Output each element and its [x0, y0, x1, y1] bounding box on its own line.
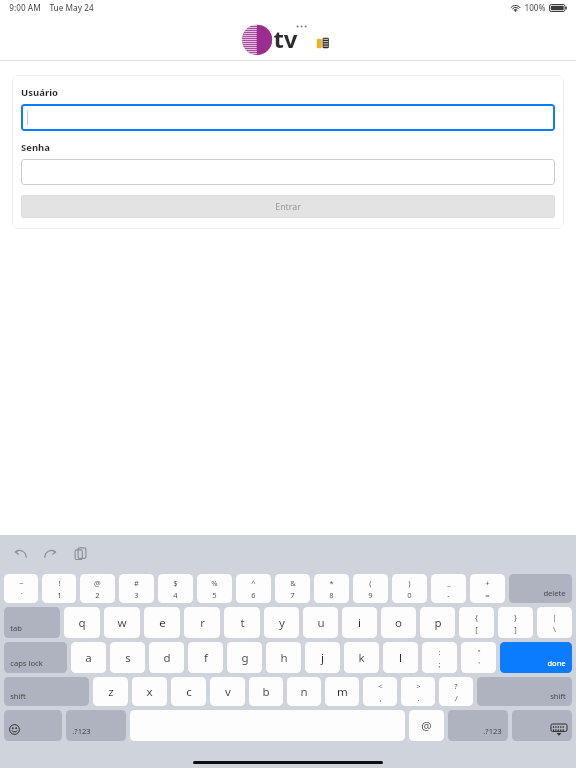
staticText: /: [455, 693, 458, 703]
button[interactable]: >: [401, 677, 435, 706]
staticText: s: [125, 650, 131, 666]
staticText: ,: [379, 693, 382, 703]
staticText: q: [78, 615, 86, 631]
button[interactable]: h: [266, 642, 301, 673]
button[interactable]: d: [149, 642, 184, 673]
staticText: *: [329, 578, 334, 588]
button[interactable]: n: [287, 677, 321, 706]
staticText: z: [108, 684, 114, 700]
button[interactable]: f: [188, 642, 223, 673]
button[interactable]: [21, 104, 555, 131]
button[interactable]: &: [275, 574, 310, 603]
staticText: 9:00 AM: [9, 2, 41, 13]
staticText: d: [163, 650, 171, 666]
button[interactable]: }: [498, 607, 533, 638]
button[interactable]: shift: [4, 677, 89, 706]
staticText: 4: [173, 590, 178, 600]
button[interactable]: a: [71, 642, 106, 673]
button[interactable]: u: [303, 607, 338, 638]
button[interactable]: <: [363, 677, 397, 706]
staticText: 6: [251, 590, 256, 600]
staticText: ): [408, 578, 411, 588]
button[interactable]: ": [461, 642, 496, 673]
button[interactable]: y: [264, 607, 299, 638]
button[interactable]: c: [171, 677, 206, 706]
staticText: .: [417, 693, 420, 703]
staticText: v: [225, 684, 231, 700]
button[interactable]: :: [422, 642, 457, 673]
staticText: g: [241, 650, 249, 666]
staticText: ~: [19, 578, 24, 588]
button[interactable]: ?: [439, 677, 473, 706]
staticText: -: [447, 590, 450, 600]
button[interactable]: q: [64, 607, 100, 638]
staticText: 0: [407, 590, 412, 600]
staticText: 5: [212, 590, 217, 600]
button[interactable]: $: [158, 574, 193, 603]
button[interactable]: l: [383, 642, 418, 673]
staticText: ": [477, 647, 481, 657]
button[interactable]: |: [537, 607, 572, 638]
button[interactable]: o: [381, 607, 416, 638]
other: Redo: [43, 546, 58, 561]
button[interactable]: .?123: [66, 710, 126, 741]
button[interactable]: b: [249, 677, 283, 706]
staticText: i: [358, 615, 361, 631]
staticText: m: [337, 684, 348, 700]
staticText: %: [211, 578, 218, 588]
staticText: :: [438, 647, 441, 657]
staticText: w: [117, 615, 127, 631]
button[interactable]: +: [470, 574, 505, 603]
button[interactable]: #: [119, 574, 154, 603]
staticText: |: [552, 612, 557, 622]
button[interactable]: x: [132, 677, 167, 706]
button[interactable]: done: [500, 642, 572, 673]
staticText: \: [553, 624, 556, 634]
button[interactable]: .?123: [448, 710, 508, 741]
button[interactable]: j: [305, 642, 340, 673]
button[interactable]: Entrar: [21, 195, 555, 218]
button[interactable]: ^: [236, 574, 271, 603]
button[interactable]: shift: [477, 677, 572, 706]
button[interactable]: tab: [4, 607, 60, 638]
staticText: #: [134, 578, 139, 588]
staticText: &: [290, 578, 296, 588]
staticText: @: [421, 718, 432, 734]
staticText: Usuário: [21, 86, 58, 99]
button[interactable]: i: [342, 607, 377, 638]
staticText: @: [94, 578, 101, 588]
staticText: 2: [95, 590, 100, 600]
button[interactable]: k: [344, 642, 379, 673]
button[interactable]: {: [459, 607, 494, 638]
button[interactable]: m: [325, 677, 359, 706]
staticText: 9: [368, 590, 373, 600]
button[interactable]: Hide keyboard: [512, 710, 572, 741]
button[interactable]: @: [409, 710, 444, 741]
button[interactable]: _: [431, 574, 466, 603]
button[interactable]: @: [80, 574, 115, 603]
button[interactable]: (: [353, 574, 388, 603]
button[interactable]: w: [104, 607, 140, 638]
button[interactable]: t: [224, 607, 260, 638]
button[interactable]: p: [420, 607, 455, 638]
button[interactable]: %: [197, 574, 232, 603]
staticText: p: [434, 615, 442, 631]
button[interactable]: caps lock: [4, 642, 67, 673]
button[interactable]: Emoji: [4, 710, 62, 741]
button[interactable]: z: [93, 677, 128, 706]
button[interactable]: g: [227, 642, 262, 673]
staticText: e: [159, 615, 166, 631]
staticText: $: [173, 578, 178, 588]
button[interactable]: ~: [4, 574, 38, 603]
button[interactable]: delete: [509, 574, 572, 603]
button[interactable]: !: [42, 574, 76, 603]
button[interactable]: e: [144, 607, 180, 638]
button[interactable]: ): [392, 574, 427, 603]
button[interactable]: [21, 159, 555, 185]
staticText: `: [20, 590, 23, 600]
button[interactable]: r: [184, 607, 220, 638]
button[interactable]: *: [314, 574, 349, 603]
button[interactable]: v: [210, 677, 245, 706]
button[interactable]: s: [110, 642, 145, 673]
